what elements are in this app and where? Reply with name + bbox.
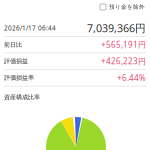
staticText: 2026/1/17 06:44 — [4, 24, 56, 32]
staticText: 評価損益率 — [4, 74, 34, 82]
staticText: 前日比 — [4, 41, 22, 48]
staticText: 資産構成比率 — [4, 93, 40, 101]
staticText: +426,223円 — [101, 56, 146, 67]
button[interactable]: 預り金を除外 — [100, 3, 145, 11]
staticText: 預り金を除外 — [109, 3, 145, 11]
staticText: +565,191円 — [101, 39, 146, 50]
staticText: +6.44% — [117, 72, 146, 83]
staticText: 7,039,366円 — [87, 21, 146, 35]
staticText: 評価損益 — [4, 57, 28, 65]
